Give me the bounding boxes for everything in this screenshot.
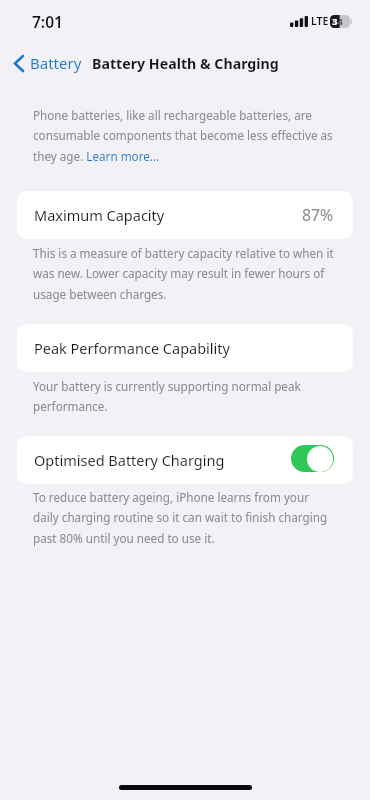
staticText: 87% — [302, 204, 334, 226]
staticText: Battery — [30, 53, 82, 73]
staticText: This is a measure of battery capacity re… — [33, 245, 335, 303]
button[interactable]: Peak Performance Capability — [17, 324, 353, 372]
staticText: Your battery is currently supporting nor… — [33, 378, 335, 415]
staticText: LTE — [311, 14, 329, 28]
staticText: To reduce battery ageing, iPhone learns … — [33, 489, 335, 547]
staticText: 34 — [332, 15, 343, 28]
other: Battery 34 percent — [330, 15, 352, 28]
button[interactable]: Optimised Battery Charging — [17, 436, 353, 484]
button[interactable]: Battery — [0, 53, 88, 73]
staticText: 34 — [332, 15, 340, 28]
staticText: 7:01 — [32, 11, 63, 32]
button[interactable]: Optimised Battery Charging toggle — [291, 445, 334, 472]
staticText: Battery Health & Charging — [92, 54, 279, 73]
staticText: Maximum Capacity — [34, 205, 165, 225]
staticText: Peak Performance Capability — [34, 338, 230, 358]
button[interactable]: Learn more — [84, 147, 160, 163]
staticText: Optimised Battery Charging — [34, 450, 225, 470]
button[interactable]: Maximum Capacity — [17, 191, 353, 239]
staticText: Phone batteries, like all rechargeable b… — [33, 107, 335, 165]
